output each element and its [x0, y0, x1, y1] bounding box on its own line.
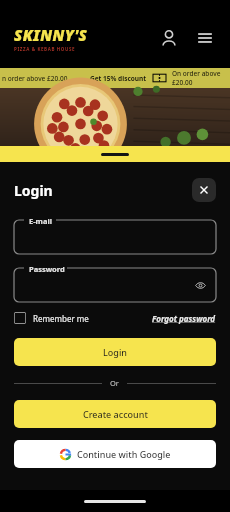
staticText: Password [29, 264, 65, 274]
button[interactable]: Continue with Google [14, 440, 216, 468]
button[interactable]: Forgot password [152, 313, 216, 324]
staticText: Continue with Google [77, 448, 171, 460]
button[interactable]: Account [156, 25, 182, 51]
button[interactable]: Create account [14, 400, 216, 428]
staticText: Login [103, 346, 127, 358]
button[interactable]: Login [14, 338, 216, 366]
staticText: SKINNY'S [14, 25, 88, 45]
button[interactable]: Remember me [14, 312, 89, 324]
button[interactable]: Close [192, 178, 216, 202]
staticText: Get 15% discount [90, 74, 147, 83]
staticText: E-mail [29, 216, 52, 226]
staticText: n order above £20.00 [2, 74, 68, 83]
staticText: Remember me [33, 313, 89, 324]
staticText: PIZZA & KEBAB HOUSE [14, 46, 76, 52]
staticText: Create account [83, 408, 148, 420]
button[interactable]: Show password [193, 278, 207, 292]
staticText: Login [14, 181, 53, 200]
staticText: Or [110, 378, 119, 388]
staticText: On order above £20.00 [172, 69, 230, 87]
button[interactable]: Menu [192, 25, 218, 51]
